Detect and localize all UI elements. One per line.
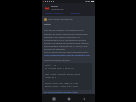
button[interactable]: https://www.jeuxvideo.com/cgu-reglement.… [44,54,90,57]
button[interactable]: Back [80,95,87,102]
staticText: 14:32 [85,0,90,3]
staticText: Lors de vos contenus a été signalé par u… [44,29,92,50]
staticText: Répondre [71,12,81,15]
staticText: Mon compte a été suspendu [48,18,73,21]
staticText: Voir les informations relatives à cette [44,91,78,94]
button[interactable]: Répondre [71,12,81,15]
button[interactable]: Recents [50,95,57,102]
button[interactable]: Laborit [45,5,64,11]
staticText: Voici les contenus signalés : [44,59,71,62]
button[interactable]: Marquer comme lu [45,12,64,15]
staticText: Laborit [51,5,58,8]
staticText: Marquer comme lu [45,12,64,15]
staticText: Sujet : Je 24 octobre 2022 à 20:04:28 Ag… [45,64,81,88]
button[interactable]: Home [65,95,72,102]
staticText: https://www.jeuxvideo.com/cgu-reglement.… [44,54,90,57]
staticText: Pour en savoir plus sur notre fonctionne… [44,51,89,54]
button[interactable]: Voir les informations relatives à cette [44,91,92,94]
staticText: Notes [44,22,51,25]
staticText: Nouveau prog [51,8,64,11]
button[interactable]: Mon compte a été suspendu [44,17,95,21]
